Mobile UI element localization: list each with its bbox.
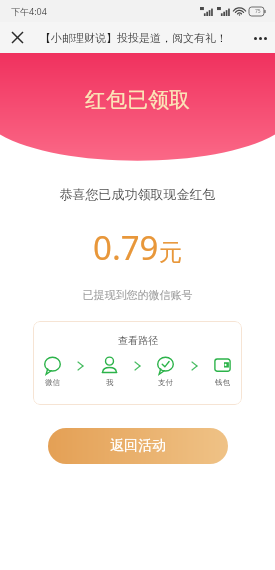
staticText: 红包已领取 [85,87,190,113]
staticText: 下午4:04 [11,5,47,17]
staticText: 我 [106,378,114,387]
staticText: 查看路径 [118,334,158,347]
button[interactable]: 更多 [245,23,275,53]
staticText: 钱包 [215,378,230,387]
staticText: 微信 [45,378,60,387]
staticText: 【小邮理财说】投投是道，阅文有礼！ [40,31,227,45]
staticText: 返回活动 [110,437,166,455]
button[interactable]: 查看路径 [33,321,242,405]
staticText: 支付 [158,378,173,387]
staticText: 0.79 [93,225,159,270]
staticText: 已提现到您的微信账号 [0,288,275,302]
staticText: 恭喜您已成功领取现金红包 [0,186,275,202]
button[interactable]: 关闭 [0,22,34,53]
staticText: 75 [255,8,261,15]
button[interactable]: 返回活动 [48,428,228,464]
staticText: 元 [159,238,182,267]
